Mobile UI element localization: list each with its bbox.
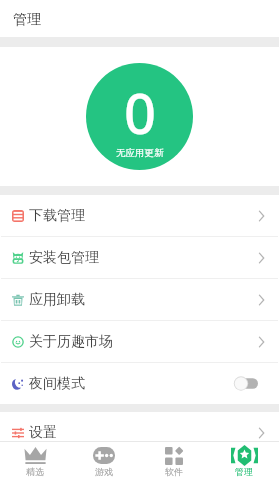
- staticText: 软件: [165, 466, 183, 477]
- staticText: 管理: [13, 11, 41, 29]
- button[interactable]: 夜间模式: [0, 363, 279, 404]
- button[interactable]: 应用卸载: [0, 279, 279, 320]
- button[interactable]: 夜间模式开关: [236, 376, 258, 391]
- staticText: 设置: [29, 424, 57, 442]
- staticText: 0: [124, 74, 157, 150]
- button[interactable]: 管理: [209, 442, 279, 480]
- button[interactable]: 软件: [139, 442, 209, 480]
- button[interactable]: 安装包管理: [0, 237, 279, 278]
- staticText: 精选: [26, 466, 44, 477]
- staticText: 应用卸载: [29, 291, 85, 309]
- staticText: 夜间模式: [29, 375, 85, 393]
- button[interactable]: 游戏: [69, 442, 139, 480]
- button[interactable]: 设置: [0, 412, 279, 453]
- staticText: 下载管理: [29, 207, 85, 225]
- button[interactable]: 0: [86, 63, 193, 170]
- staticText: 无应用更新: [116, 147, 164, 159]
- staticText: 安装包管理: [29, 249, 99, 267]
- staticText: 管理: [235, 466, 253, 477]
- button[interactable]: 精选: [0, 442, 69, 480]
- button[interactable]: 下载管理: [0, 195, 279, 236]
- button[interactable]: 关于历趣市场: [0, 321, 279, 362]
- staticText: 关于历趣市场: [29, 333, 113, 351]
- staticText: 游戏: [95, 466, 113, 477]
